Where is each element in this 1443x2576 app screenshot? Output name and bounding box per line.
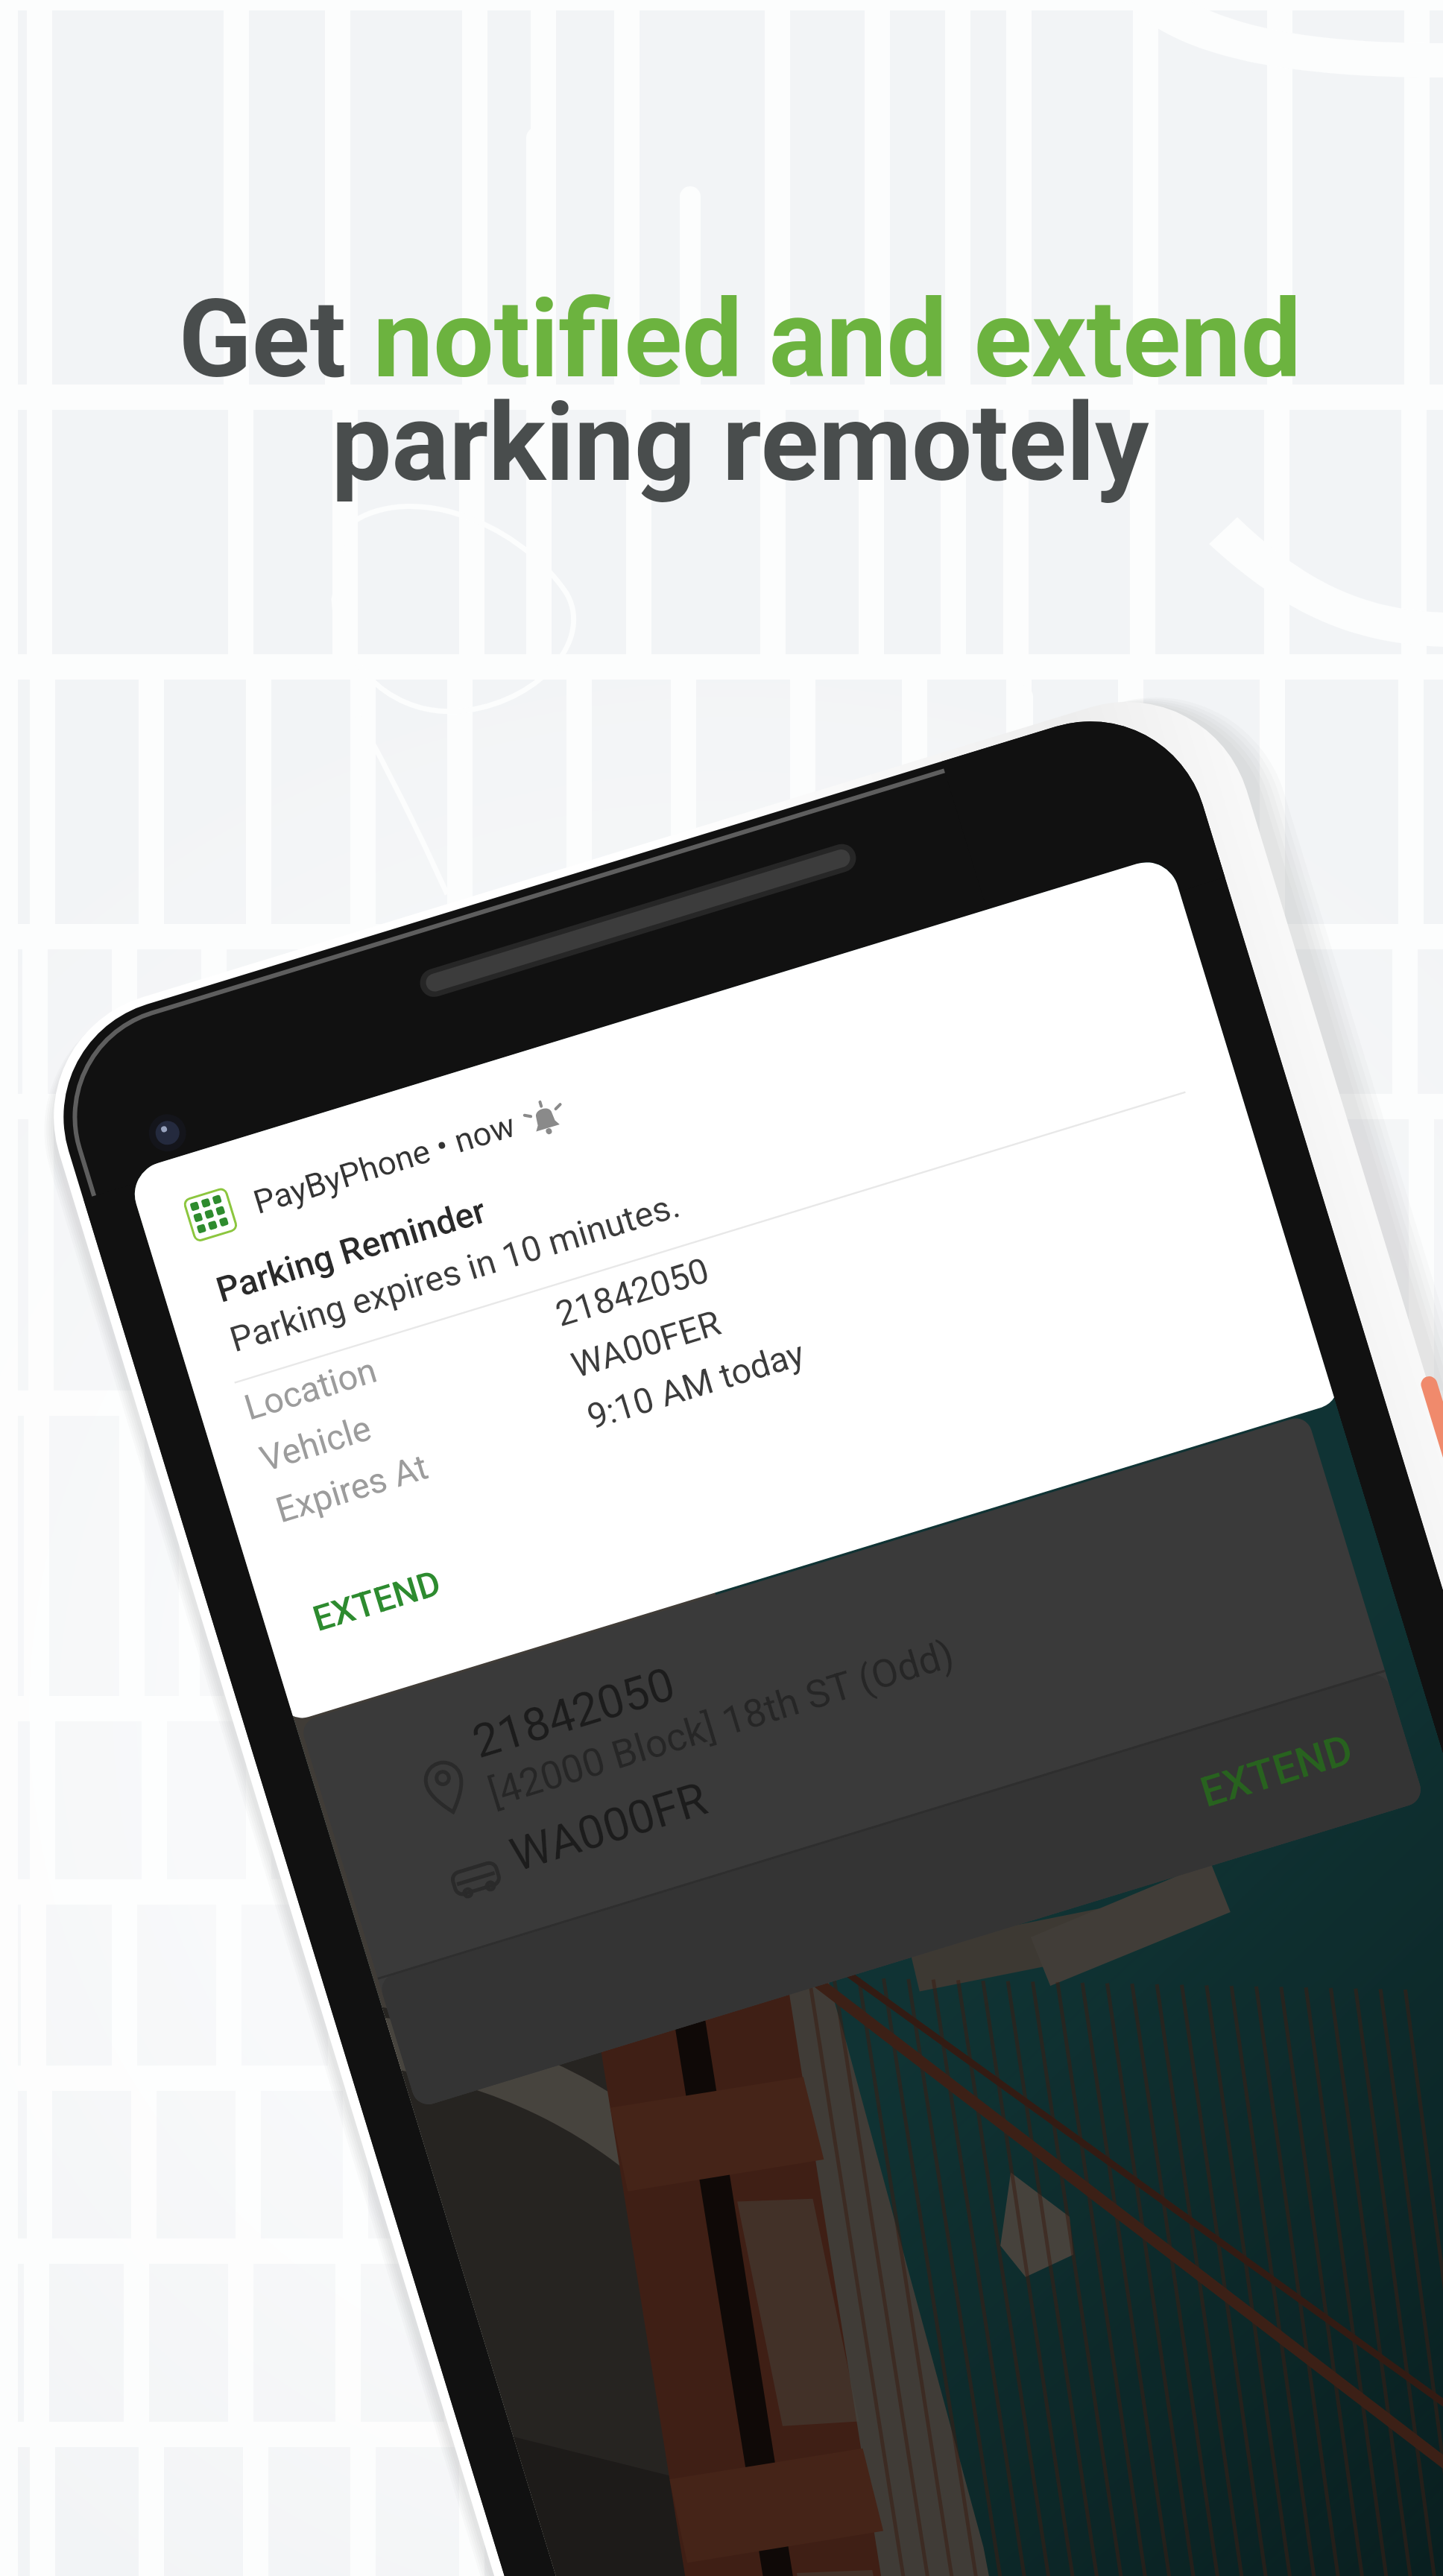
button[interactable]: Get notified and extend parking remotely xyxy=(0,0,1443,2576)
